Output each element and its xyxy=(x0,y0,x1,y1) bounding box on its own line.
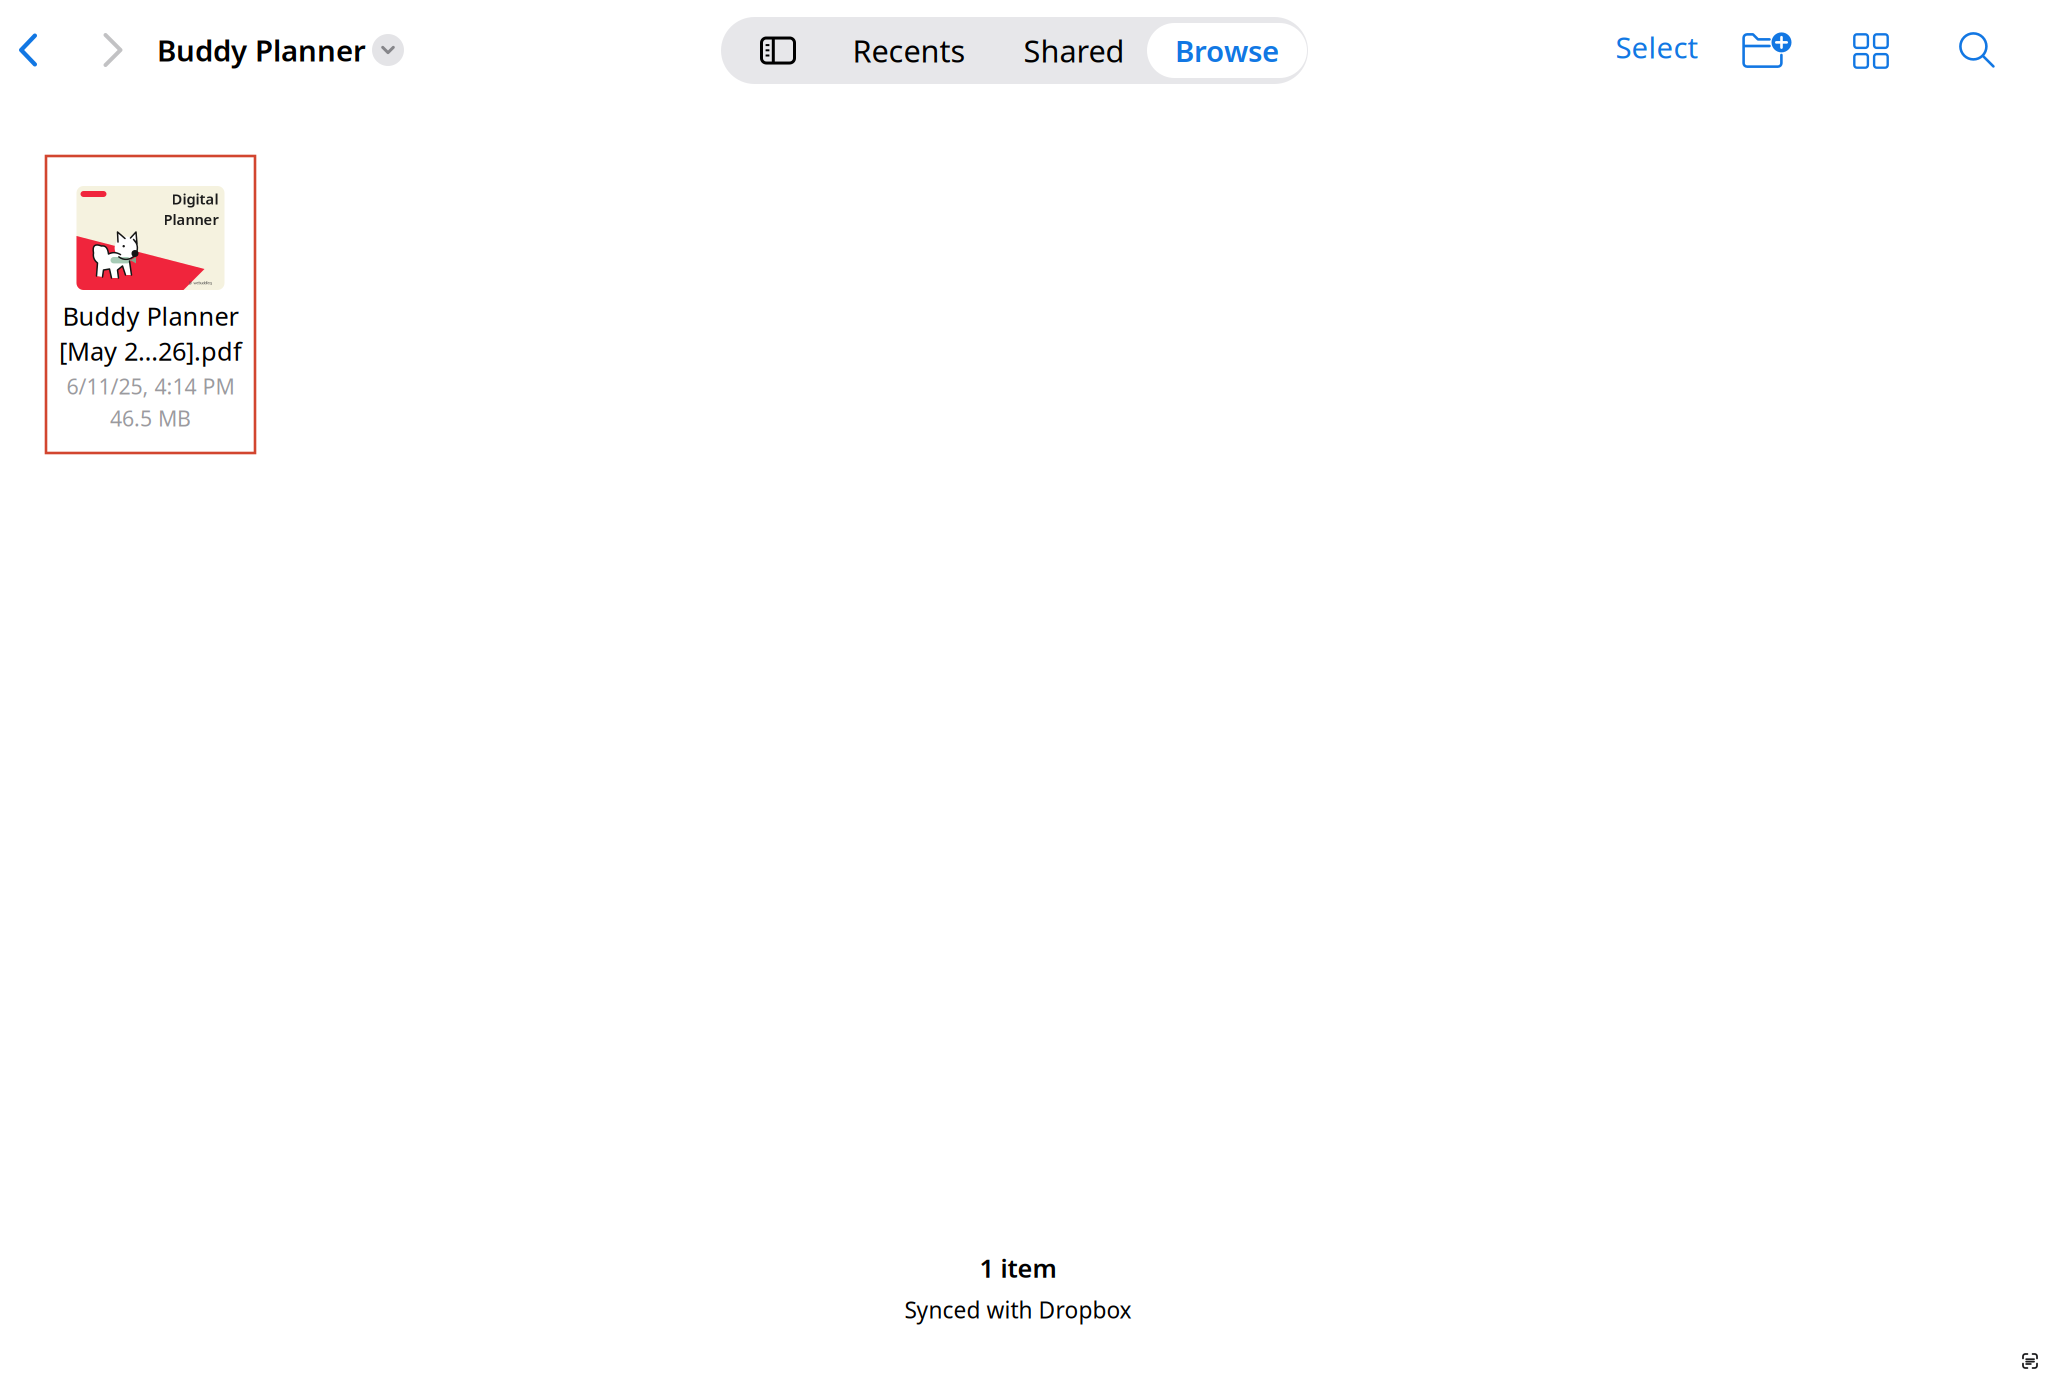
button[interactable]: Change View Options xyxy=(1843,19,1899,83)
button[interactable]: Browse xyxy=(1147,17,1307,84)
staticText: Buddy Planner xyxy=(62,299,238,333)
button[interactable]: Select xyxy=(1611,15,1703,79)
button[interactable]: Show Sidebar xyxy=(721,17,835,84)
staticText: Synced with Dropbox xyxy=(904,1295,1131,1325)
staticText: [May 2…26].pdf xyxy=(59,334,242,368)
staticText: Digital xyxy=(171,189,218,208)
staticText: 1 item xyxy=(979,1251,1056,1285)
staticText: Shared xyxy=(1023,30,1124,71)
button[interactable]: Forward xyxy=(85,18,141,82)
button[interactable]: Recents xyxy=(823,17,995,84)
button[interactable]: Buddy Planner xyxy=(157,18,404,82)
button[interactable]: Buddy Planner [May 2…26].pdf, 6/11/25, 4… xyxy=(46,156,255,453)
button[interactable]: New Folder xyxy=(1739,19,1795,83)
staticText: 46.5 MB xyxy=(110,404,191,432)
button[interactable]: Scan Documents xyxy=(2011,1343,2048,1373)
button[interactable]: Back xyxy=(0,18,56,82)
staticText: Recents xyxy=(852,30,965,71)
button[interactable]: Search xyxy=(1949,18,2005,82)
staticText: Select xyxy=(1615,27,1698,66)
staticText: Planner xyxy=(163,209,218,229)
staticText: 6/11/25, 4:14 PM xyxy=(66,372,234,400)
staticText: @ webuddleg xyxy=(188,280,211,285)
staticText: Browse xyxy=(1175,31,1279,70)
staticText: Buddy Planner xyxy=(157,30,366,69)
button[interactable]: Shared xyxy=(1001,17,1147,84)
